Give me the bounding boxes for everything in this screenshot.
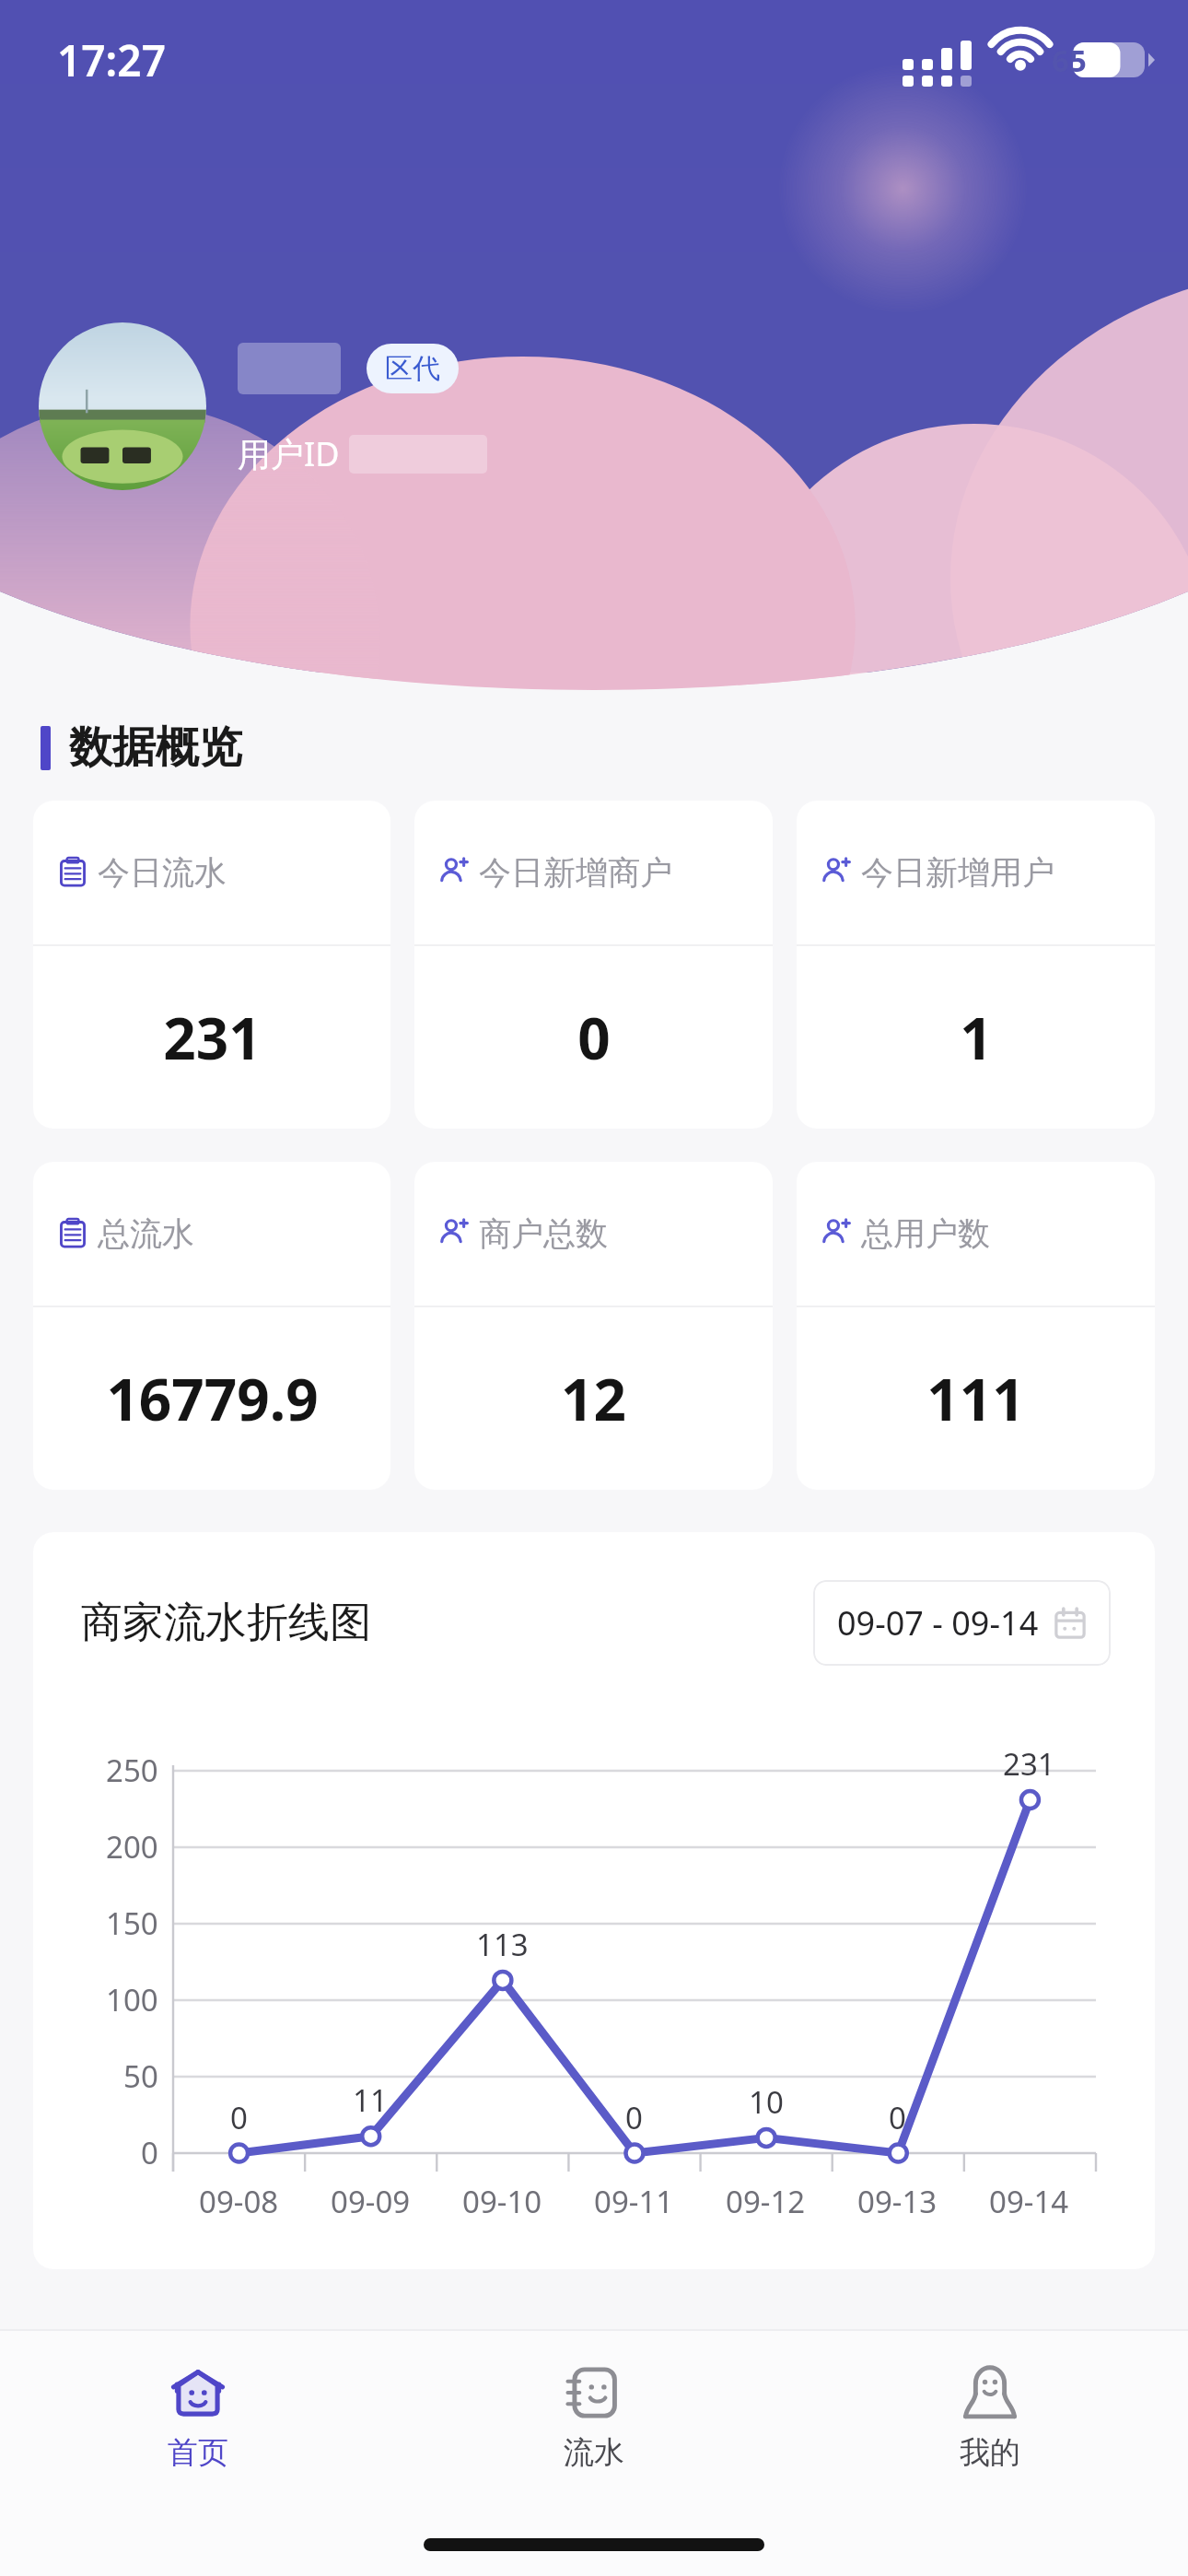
staticText: 0 — [625, 2097, 643, 2138]
staticText: 16779.9 — [106, 1360, 319, 1437]
staticText: 250 — [106, 1750, 158, 1791]
staticText: 09-14 — [989, 2181, 1069, 2222]
staticText: 0 — [889, 2097, 906, 2138]
staticText: 09-11 — [594, 2181, 674, 2222]
button[interactable]: 今日新增商户 — [414, 801, 773, 1129]
staticText: 商户总数 — [479, 1213, 608, 1254]
staticText: 17:27 — [57, 31, 166, 89]
staticText: 09-07 - 09-14 — [837, 1600, 1039, 1645]
staticText: 1 — [960, 999, 993, 1076]
staticText: 0 — [141, 2132, 158, 2173]
staticText: 总用户数 — [861, 1213, 990, 1254]
button[interactable]: 商户总数 — [414, 1162, 773, 1490]
button[interactable]: 用户头像 — [39, 322, 206, 490]
staticText: 09-08 — [199, 2181, 279, 2222]
button[interactable]: 首页 — [0, 2331, 396, 2502]
staticText: 12 — [561, 1360, 626, 1437]
staticText: 0 — [577, 999, 611, 1076]
staticText: 200 — [106, 1826, 158, 1868]
button[interactable]: 总流水 — [33, 1162, 390, 1490]
button[interactable]: 流水 — [396, 2331, 792, 2502]
staticText: 50 — [123, 2055, 158, 2097]
staticText: 09-12 — [726, 2181, 806, 2222]
button[interactable]: 区代 — [367, 344, 459, 393]
staticText: 数据概览 — [69, 720, 242, 775]
button[interactable]: 今日流水 — [33, 801, 390, 1129]
staticText: 流水 — [564, 2433, 624, 2472]
staticText: 首页 — [168, 2433, 228, 2472]
staticText: 231 — [1003, 1743, 1055, 1785]
staticText: 10 — [749, 2081, 784, 2123]
staticText: 150 — [106, 1903, 158, 1944]
staticText: 09-10 — [462, 2181, 542, 2222]
staticText: 111 — [926, 1360, 1025, 1437]
staticText: 区代 — [385, 351, 440, 386]
staticText: 65 — [1052, 40, 1087, 81]
button[interactable]: 今日新增用户 — [797, 801, 1155, 1129]
staticText: 总流水 — [98, 1213, 194, 1254]
staticText: 我的 — [960, 2433, 1020, 2472]
button[interactable]: 总用户数 — [797, 1162, 1155, 1490]
button[interactable]: 我的 — [792, 2331, 1188, 2502]
staticText: 100 — [106, 1979, 158, 2020]
staticText: 今日新增用户 — [861, 852, 1054, 893]
staticText: 11 — [353, 2079, 388, 2121]
staticText: 09-13 — [857, 2181, 938, 2222]
staticText: 231 — [163, 999, 262, 1076]
button[interactable]: 09-07 - 09-14 — [813, 1580, 1111, 1666]
staticText: 今日流水 — [98, 852, 227, 893]
staticText: 用户ID — [238, 431, 340, 476]
staticText: 今日新增商户 — [479, 852, 672, 893]
staticText: 113 — [476, 1924, 529, 1965]
staticText: 商家流水折线图 — [81, 1597, 371, 1649]
staticText: 09-09 — [331, 2181, 411, 2222]
staticText: 0 — [230, 2097, 248, 2138]
